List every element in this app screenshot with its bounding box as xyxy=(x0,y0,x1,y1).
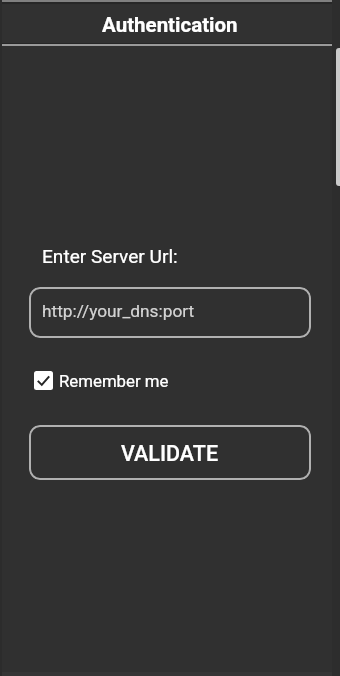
button[interactable]: Authentication xyxy=(0,5,340,45)
staticText: Enter Server Url: xyxy=(42,245,178,267)
staticText: Authentication xyxy=(102,13,238,37)
button[interactable]: VALIDATE xyxy=(29,425,311,480)
staticText: Remember me xyxy=(59,371,169,391)
staticText: VALIDATE xyxy=(121,441,219,466)
other: Scroll position xyxy=(336,48,340,186)
button[interactable]: Remember me xyxy=(34,370,169,390)
staticText: http://your_dns:port xyxy=(42,301,195,321)
button[interactable]: http://your_dns:port xyxy=(29,287,311,338)
